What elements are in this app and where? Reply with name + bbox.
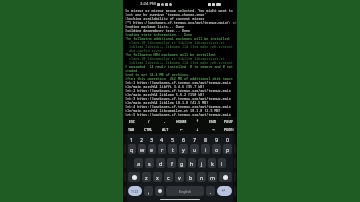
button[interactable]: PGUP (221, 117, 237, 125)
button[interactable]: Shift (128, 172, 140, 182)
button[interactable]: HOME (173, 117, 189, 125)
button[interactable]: f (167, 158, 176, 168)
button[interactable]: h (188, 158, 196, 168)
staticText: ← (180, 128, 183, 132)
staticText: 7 (193, 136, 197, 143)
staticText: u (193, 146, 197, 153)
staticText: c (167, 174, 170, 181)
button[interactable]: → (205, 125, 221, 134)
button[interactable]: 9 (211, 134, 222, 144)
staticText: clang-18 libcompiler-rt libllvm libsanit… (125, 56, 237, 60)
button[interactable]: , (144, 186, 153, 196)
staticText: Get:2 https://packages-cf.termux.org/apt… (125, 88, 237, 92)
button[interactable]: x (153, 172, 162, 182)
button[interactable]: v (175, 172, 184, 182)
button[interactable]: o (212, 144, 221, 154)
button[interactable]: n (197, 172, 206, 182)
button[interactable]: c (164, 172, 173, 182)
staticText: ↵ (222, 188, 227, 194)
button[interactable]: y (179, 144, 188, 154)
staticText: 1 (130, 136, 134, 143)
button[interactable]: Enter (217, 186, 232, 196)
staticText: PGUP (224, 119, 234, 124)
button[interactable]: key (123, 172, 126, 182)
button[interactable]: key (123, 158, 126, 168)
button[interactable]: j (198, 158, 206, 168)
button[interactable]: English (166, 186, 204, 196)
button[interactable]: z (142, 172, 151, 182)
button[interactable]: 3 (147, 134, 157, 144)
staticText: 0 (226, 136, 230, 143)
button[interactable]: i (201, 144, 210, 154)
button[interactable]: key (123, 144, 126, 154)
staticText: x (156, 174, 159, 181)
staticText: 6 (182, 136, 186, 143)
button[interactable]: 4 (157, 134, 167, 144)
button[interactable]: b (186, 172, 195, 182)
staticText: ↑ (196, 119, 199, 123)
button[interactable]: END (205, 117, 221, 125)
button[interactable]: key (234, 172, 237, 182)
staticText: n (200, 174, 204, 181)
staticText: Get:5 https://packages-cf.termux.org/apt… (125, 112, 237, 116)
button[interactable]: ?123 (128, 186, 142, 196)
staticText: / (148, 119, 150, 124)
staticText: b (189, 174, 193, 181)
button[interactable]: ↑ (189, 117, 205, 125)
button[interactable]: 1 (127, 134, 137, 144)
button[interactable]: e (148, 144, 156, 154)
button[interactable]: r (158, 144, 166, 154)
button[interactable]: Backspace (219, 172, 232, 182)
staticText: 8 (204, 136, 208, 143)
button[interactable]: ↓ (189, 125, 205, 134)
staticText: p (226, 146, 230, 153)
button[interactable]: CTRL (140, 125, 157, 134)
button[interactable]: . (206, 186, 215, 196)
button[interactable]: w (138, 144, 146, 154)
staticText: Get:1 https://packages-cf.termux.org/apt… (125, 80, 237, 84)
staticText: The following additional packages will b… (125, 36, 231, 40)
staticText: , (148, 188, 150, 195)
staticText: g (180, 160, 184, 167)
button[interactable]: ALT (157, 125, 173, 134)
button[interactable]: m (208, 172, 217, 182)
button[interactable]: key (234, 186, 237, 196)
staticText: Need to get 34.4 MB of archives. (125, 72, 191, 76)
staticText: 4 (160, 136, 164, 143)
button[interactable]: g (178, 158, 186, 168)
button[interactable]: s (145, 158, 154, 168)
button[interactable]: 6 (178, 134, 189, 144)
button[interactable]: 7 (189, 134, 200, 144)
button[interactable]: d (156, 158, 165, 168)
staticText: ESC (129, 119, 135, 124)
button[interactable]: a (134, 158, 143, 168)
button[interactable]: Emoji (155, 186, 164, 196)
button[interactable]: u (190, 144, 199, 154)
button[interactable]: PGDN (221, 125, 237, 134)
button[interactable]: 5 (167, 134, 178, 144)
button[interactable]: key (234, 144, 237, 154)
button[interactable]: TAB (123, 125, 140, 134)
staticText: graded. (125, 68, 140, 72)
staticText: - (164, 119, 166, 124)
button[interactable]: k (208, 158, 216, 168)
button[interactable]: key (234, 158, 237, 168)
staticText: ALT (162, 127, 169, 132)
button[interactable]: / (140, 117, 157, 125)
button[interactable]: - (157, 117, 173, 125)
staticText: ble/main aarch64 libllvm 18.1.8 [41.5 MB… (125, 100, 209, 104)
button[interactable]: 2 (137, 134, 147, 144)
button[interactable]: l (218, 158, 226, 168)
staticText: The following NEW packages will be insta… (125, 52, 217, 56)
button[interactable]: p (223, 144, 232, 154)
button[interactable]: 0 (222, 134, 233, 144)
button[interactable]: ESC (123, 117, 140, 125)
button[interactable]: 8 (200, 134, 211, 144)
button[interactable]: ← (173, 125, 189, 134)
button[interactable]: key (123, 186, 126, 196)
button[interactable]: q (128, 144, 136, 154)
staticText: q (130, 146, 134, 153)
button[interactable]: t (168, 144, 177, 154)
staticText: m (210, 174, 216, 181)
